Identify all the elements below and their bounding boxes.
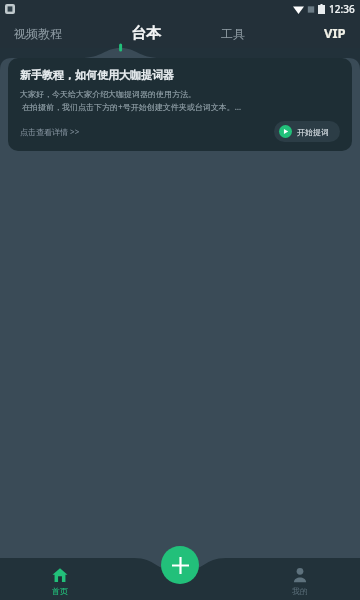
button[interactable]: 新建	[161, 546, 199, 584]
button[interactable]: 视频教程	[14, 18, 102, 48]
button[interactable]: 新手教程，如何使用大咖提词器	[8, 58, 352, 151]
staticText: 工具	[221, 26, 245, 41]
button[interactable]: 我的	[278, 563, 322, 600]
staticText: 开始提词	[297, 127, 329, 137]
button[interactable]: 首页	[38, 563, 82, 600]
staticText: 12:36	[329, 2, 355, 16]
staticText: 我的	[292, 586, 308, 596]
staticText: 大家好，今天给大家介绍大咖提词器的使用方法。	[20, 89, 196, 99]
staticText: 台本	[131, 24, 161, 43]
staticText: 在拍摄前，我们点击下方的+号开始创建文件夹或台词文本。…	[20, 101, 241, 112]
button[interactable]: 台本	[102, 18, 189, 48]
staticText: VIP	[324, 24, 346, 42]
staticText: 视频教程	[14, 26, 62, 41]
button[interactable]: 开始提词	[274, 121, 340, 142]
staticText: 点击查看详情 >>	[20, 126, 80, 137]
button[interactable]: 点击查看详情 >>	[20, 126, 80, 137]
staticText: 首页	[52, 586, 68, 596]
button[interactable]: 工具	[189, 18, 276, 48]
staticText: 新手教程，如何使用大咖提词器	[20, 68, 174, 82]
button[interactable]: VIP	[276, 18, 346, 48]
